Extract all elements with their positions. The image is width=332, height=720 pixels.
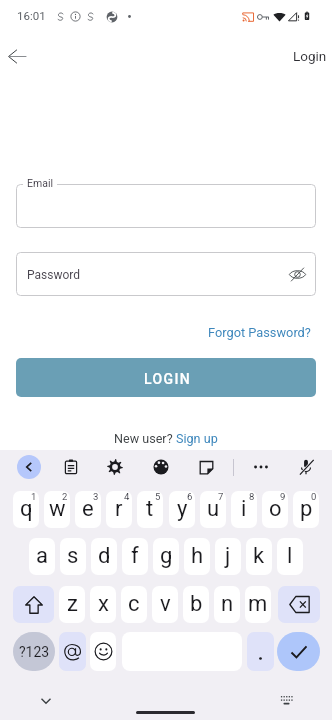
button[interactable]: Sign up <box>176 431 218 446</box>
staticText: p <box>300 496 313 522</box>
button[interactable]: s <box>60 538 86 575</box>
button[interactable]: z <box>59 586 85 623</box>
button[interactable]: Password <box>16 252 316 296</box>
staticText: g <box>160 543 173 569</box>
staticText: 9 <box>280 491 286 502</box>
staticText: z <box>67 591 78 617</box>
button[interactable]: h <box>184 538 210 575</box>
button[interactable]: p <box>293 491 319 528</box>
staticText: New user? <box>114 431 176 446</box>
button[interactable]: a <box>29 538 55 575</box>
staticText: 3 <box>93 491 99 502</box>
staticText: x <box>98 591 109 617</box>
button[interactable]: Backspace <box>278 586 320 623</box>
staticText: LOGIN <box>144 371 192 387</box>
staticText: i <box>241 496 247 522</box>
button[interactable]: More options <box>246 452 276 482</box>
staticText: Email <box>27 177 53 189</box>
button[interactable]: At sign <box>59 632 86 671</box>
button[interactable]: y <box>169 491 195 528</box>
button[interactable]: n <box>214 586 240 623</box>
staticText: s <box>67 543 79 569</box>
staticText: Forgot Password? <box>208 325 311 340</box>
button[interactable]: ?123 <box>13 632 55 671</box>
staticText: n <box>221 591 234 617</box>
button[interactable]: r <box>106 491 132 528</box>
button[interactable]: Hide keyboard <box>34 689 58 713</box>
staticText: m <box>248 591 268 617</box>
button[interactable]: Themes <box>146 452 176 482</box>
button[interactable]: Voice input <box>291 452 321 482</box>
staticText: 0 <box>311 491 317 502</box>
button[interactable]: Period <box>247 632 274 671</box>
staticText: d <box>98 543 111 569</box>
button[interactable]: c <box>121 586 147 623</box>
staticText: l <box>287 543 293 569</box>
button[interactable]: Shift <box>13 586 54 623</box>
button[interactable]: Forgot Password? <box>207 324 312 341</box>
button[interactable]: u <box>200 491 226 528</box>
staticText: 1 <box>31 491 37 502</box>
staticText: Login <box>293 48 327 64</box>
staticText: t <box>146 496 154 522</box>
button[interactable]: i <box>231 491 257 528</box>
staticText: b <box>190 591 203 617</box>
staticText: 6 <box>187 491 193 502</box>
staticText: w <box>49 496 66 522</box>
staticText: h <box>191 543 204 569</box>
staticText: 2 <box>62 491 68 502</box>
button[interactable]: d <box>91 538 117 575</box>
staticText: Password <box>27 268 81 282</box>
button[interactable]: Back <box>0 39 34 73</box>
staticText: 8 <box>249 491 255 502</box>
button[interactable]: v <box>152 586 178 623</box>
button[interactable]: x <box>90 586 116 623</box>
staticText: 4 <box>124 491 130 502</box>
staticText: f <box>131 543 139 569</box>
staticText: ?123 <box>19 644 50 660</box>
staticText: u <box>207 496 220 522</box>
button[interactable]: LOGIN <box>16 358 316 397</box>
button[interactable]: Stickers <box>191 452 221 482</box>
button[interactable]: Settings <box>100 452 130 482</box>
button[interactable]: f <box>122 538 148 575</box>
button[interactable]: o <box>262 491 288 528</box>
button[interactable]: l <box>277 538 303 575</box>
button[interactable]: Previous suggestions <box>17 455 41 479</box>
staticText: 16:01 <box>17 9 46 22</box>
button[interactable]: w <box>44 491 70 528</box>
staticText: 5 <box>155 491 161 502</box>
button[interactable]: Enter <box>277 632 320 671</box>
button[interactable]: k <box>246 538 272 575</box>
staticText: c <box>128 591 140 617</box>
button[interactable]: t <box>137 491 163 528</box>
button[interactable]: j <box>215 538 241 575</box>
button[interactable]: q <box>13 491 39 528</box>
staticText: 7 <box>218 491 224 502</box>
button[interactable]: g <box>153 538 179 575</box>
button[interactable]: Emoji <box>90 632 116 671</box>
staticText: q <box>20 496 33 522</box>
staticText: Sign up <box>176 431 218 446</box>
staticText: o <box>269 496 282 522</box>
staticText: e <box>82 496 94 522</box>
button[interactable]: Clipboard <box>56 452 86 482</box>
staticText: a <box>36 543 48 569</box>
button[interactable]: Show password <box>284 261 310 287</box>
button[interactable]: m <box>245 586 271 623</box>
button[interactable] <box>16 184 316 228</box>
staticText: y <box>177 496 188 522</box>
button[interactable]: b <box>183 586 209 623</box>
button[interactable]: e <box>75 491 101 528</box>
staticText: v <box>160 591 171 617</box>
button[interactable]: Switch keyboard <box>274 688 298 712</box>
staticText: j <box>225 543 231 569</box>
staticText: k <box>253 543 265 569</box>
staticText: r <box>115 496 123 522</box>
